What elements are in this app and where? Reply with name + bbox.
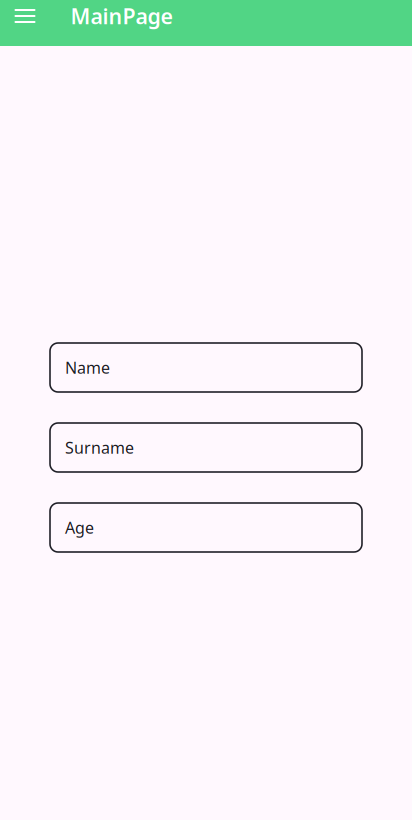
staticText: Surname	[65, 437, 134, 458]
button[interactable]: Menu	[4, 1, 46, 31]
button[interactable]: Name	[50, 343, 362, 392]
staticText: MainPage	[70, 2, 172, 30]
button[interactable]: Surname	[50, 423, 362, 472]
button[interactable]: Age	[50, 503, 362, 552]
staticText: Age	[65, 517, 94, 538]
staticText: Name	[65, 357, 110, 378]
